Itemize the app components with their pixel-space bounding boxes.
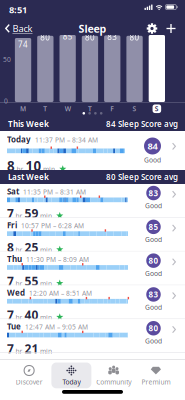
staticText: min xyxy=(40,245,52,254)
staticText: Back xyxy=(12,22,32,35)
staticText: 12:20 AM – 8:51 AM xyxy=(29,289,92,298)
staticText: 7 xyxy=(7,341,14,357)
button[interactable]: Premium xyxy=(135,362,177,388)
staticText: Wed xyxy=(7,287,25,298)
button[interactable]: Wed xyxy=(0,285,185,319)
staticText: F xyxy=(110,104,114,113)
staticText: 8:51 xyxy=(9,3,27,16)
staticText: 8 xyxy=(7,157,15,175)
button[interactable]: Community xyxy=(92,362,135,388)
staticText: Good xyxy=(145,336,162,345)
button[interactable]: Today xyxy=(0,131,185,170)
staticText: 84 xyxy=(152,31,162,42)
staticText: min xyxy=(43,165,55,174)
staticText: min xyxy=(40,347,52,356)
staticText: min xyxy=(40,313,52,322)
staticText: 74 xyxy=(18,39,28,50)
staticText: 7 xyxy=(7,273,14,289)
button[interactable]: Discover xyxy=(8,362,50,388)
staticText: Discover xyxy=(16,377,43,386)
staticText: hr xyxy=(16,165,23,174)
staticText: 80 xyxy=(85,32,95,43)
staticText: Good xyxy=(145,235,162,244)
staticText: Tue xyxy=(7,321,21,332)
staticText: 80 xyxy=(148,255,158,266)
staticText: Thu xyxy=(7,254,22,264)
staticText: Good xyxy=(144,155,161,164)
staticText: 12:47 AM – 9:05 AM xyxy=(25,323,88,331)
staticText: Today xyxy=(62,377,80,386)
staticText: Good xyxy=(145,269,162,278)
staticText: Premium xyxy=(141,377,170,386)
staticText: 84 xyxy=(147,140,157,152)
staticText: 10 xyxy=(25,157,41,175)
staticText: 80 xyxy=(130,32,140,43)
staticText: 8 xyxy=(7,239,14,255)
staticText: hr xyxy=(15,212,22,220)
staticText: 83 xyxy=(148,289,158,300)
button[interactable]: Settings xyxy=(143,20,160,37)
staticText: 83 xyxy=(107,32,117,42)
staticText: Community xyxy=(96,377,131,386)
button[interactable]: Tue xyxy=(0,319,185,353)
staticText: hr xyxy=(15,279,22,288)
staticText: This Week xyxy=(8,119,49,129)
staticText: 25 xyxy=(24,239,38,255)
staticText: 80 xyxy=(40,32,50,43)
button[interactable]: Fri xyxy=(0,218,185,252)
staticText: 7 xyxy=(7,205,14,221)
staticText: Fri xyxy=(7,220,17,230)
staticText: W xyxy=(65,104,71,113)
staticText: Sat xyxy=(7,186,19,197)
staticText: min xyxy=(40,279,52,288)
staticText: 10:57 PM – 6:28 AM xyxy=(21,221,84,230)
staticText: T xyxy=(88,104,92,113)
staticText: 21 xyxy=(24,341,38,357)
staticText: Good xyxy=(145,303,162,312)
staticText: 11:30 PM – 8:09 AM xyxy=(26,255,89,264)
staticText: Today xyxy=(7,134,31,145)
staticText: 85 xyxy=(148,221,158,232)
staticText: 83 xyxy=(148,188,158,198)
staticText: S xyxy=(133,104,137,113)
staticText: 40 xyxy=(24,307,38,323)
staticText: min xyxy=(40,212,52,220)
staticText: 80 xyxy=(148,323,158,333)
staticText: 0 xyxy=(4,96,8,105)
staticText: 59 xyxy=(24,205,38,221)
staticText: 7 xyxy=(7,307,14,323)
staticText: hr xyxy=(15,347,22,356)
staticText: 50 xyxy=(3,55,11,64)
staticText: hr xyxy=(15,313,22,322)
staticText: 84 Sleep Score avg xyxy=(106,119,178,129)
button[interactable]: Sat xyxy=(0,184,185,218)
button[interactable]: Add sleep log xyxy=(162,20,179,37)
button[interactable]: Thu xyxy=(0,252,185,285)
staticText: S xyxy=(155,104,159,113)
staticText: 11:37 PM – 8:34 AM xyxy=(35,135,98,144)
button[interactable]: Today xyxy=(50,362,92,388)
staticText: Last Week xyxy=(8,172,49,182)
staticText: 55 xyxy=(24,273,38,289)
staticText: Sleep xyxy=(78,21,106,36)
staticText: T xyxy=(43,104,47,113)
staticText: Good xyxy=(145,201,162,210)
button[interactable]: Back xyxy=(0,16,32,36)
staticText: 11:35 PM – 8:31 AM xyxy=(23,187,86,196)
staticText: 85 xyxy=(63,31,73,42)
staticText: M xyxy=(20,104,26,113)
staticText: 80 Sleep Score avg xyxy=(106,172,178,182)
staticText: hr xyxy=(15,245,22,254)
